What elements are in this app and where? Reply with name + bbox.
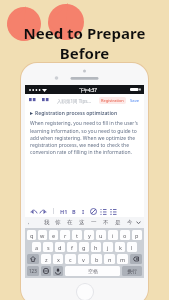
button[interactable]: 你 xyxy=(52,219,64,226)
button[interactable]: 不 xyxy=(100,219,112,226)
button[interactable] xyxy=(136,220,141,225)
button[interactable]: Insert xyxy=(41,96,50,105)
staticText: e xyxy=(52,232,56,239)
button[interactable]: f xyxy=(67,242,77,252)
staticText: y xyxy=(88,232,91,239)
staticText: 在 xyxy=(67,219,73,226)
button[interactable]: v xyxy=(78,254,89,264)
staticText: 你 xyxy=(55,219,61,226)
button[interactable]: Bulleted list xyxy=(99,207,108,216)
button[interactable]: p xyxy=(132,230,142,240)
button[interactable]: Redo xyxy=(39,207,48,216)
staticText: 下午4:37 xyxy=(79,87,97,93)
staticText: 换行 xyxy=(127,268,137,274)
button[interactable]: Registration xyxy=(101,98,124,103)
staticText: Save xyxy=(130,98,140,104)
staticText: 123 xyxy=(29,268,37,274)
staticText: f xyxy=(71,244,73,251)
staticText: B xyxy=(72,208,76,215)
button[interactable]: Undo xyxy=(29,207,38,216)
staticText: 是 xyxy=(115,219,121,226)
button[interactable]: c xyxy=(65,254,76,264)
button[interactable]: 我 xyxy=(41,219,52,226)
staticText: 今 xyxy=(127,219,133,226)
button[interactable]: n xyxy=(104,254,115,264)
button[interactable]: k xyxy=(115,242,125,252)
button[interactable]: Shift xyxy=(27,254,39,264)
button[interactable]: Heading xyxy=(59,207,68,216)
button[interactable]: Language xyxy=(41,266,51,276)
button[interactable]: Backspace xyxy=(130,254,142,264)
staticText: d xyxy=(58,244,62,251)
button[interactable]: b xyxy=(91,254,102,264)
button[interactable]: s xyxy=(43,242,53,252)
button[interactable]: 换行 xyxy=(122,266,142,276)
staticText: o xyxy=(123,232,127,239)
staticText: l xyxy=(131,244,133,251)
button[interactable]: h xyxy=(91,242,101,252)
staticText: q xyxy=(30,232,34,239)
button[interactable]: q xyxy=(27,230,36,240)
button[interactable]: m xyxy=(117,254,128,264)
button[interactable]: i xyxy=(108,230,118,240)
button[interactable]: x xyxy=(53,254,63,264)
staticText: 入职第1周 Tips... xyxy=(57,98,91,104)
button[interactable]: a xyxy=(32,242,41,252)
staticText: r xyxy=(64,232,67,239)
button[interactable]: Save xyxy=(130,98,140,104)
button[interactable]: Numbered list xyxy=(109,207,118,216)
button[interactable]: Home xyxy=(77,284,93,300)
staticText: 这 xyxy=(79,219,85,226)
button[interactable]: 这 xyxy=(76,219,88,226)
staticText: n xyxy=(108,256,112,263)
button[interactable]: 是 xyxy=(112,219,124,226)
staticText: h xyxy=(94,244,98,251)
button[interactable]: Text style xyxy=(28,96,37,105)
staticText: Need to Prepare Before xyxy=(0,23,169,63)
button[interactable]: d xyxy=(55,242,65,252)
staticText: Registration xyxy=(101,98,124,103)
staticText: b xyxy=(95,256,99,263)
button[interactable]: e xyxy=(49,230,58,240)
staticText: t xyxy=(76,232,78,239)
button[interactable]: Bold xyxy=(69,207,78,216)
staticText: I xyxy=(82,208,85,215)
staticText: g xyxy=(82,244,86,251)
staticText: a xyxy=(35,244,39,251)
staticText: s xyxy=(47,244,50,251)
staticText: c xyxy=(69,256,72,263)
staticText: , xyxy=(28,219,30,226)
staticText: u xyxy=(99,232,103,239)
button[interactable]: l xyxy=(127,242,137,252)
button[interactable]: 空格 xyxy=(65,266,120,276)
staticText: 空格 xyxy=(88,268,98,274)
button[interactable]: t xyxy=(72,230,82,240)
button[interactable]: 今 xyxy=(124,219,136,226)
staticText: k xyxy=(119,244,122,251)
staticText: Registration process optimization xyxy=(35,110,118,117)
button[interactable]: z xyxy=(41,254,51,264)
staticText: v xyxy=(82,256,85,263)
button[interactable]: g xyxy=(79,242,89,252)
staticText: i xyxy=(112,232,114,239)
button[interactable]: r xyxy=(60,230,70,240)
button[interactable]: y xyxy=(84,230,94,240)
button[interactable]: Strikethrough xyxy=(89,207,98,216)
staticText: j xyxy=(107,244,109,251)
staticText: H1 xyxy=(60,208,68,215)
button[interactable]: j xyxy=(103,242,113,252)
staticText: w xyxy=(40,232,45,239)
button[interactable]: u xyxy=(96,230,106,240)
button[interactable]: w xyxy=(38,230,47,240)
staticText: 不 xyxy=(103,219,109,226)
staticText: m xyxy=(120,256,126,263)
staticText: p xyxy=(135,232,139,239)
button[interactable]: 在 xyxy=(64,219,76,226)
button[interactable]: 一 xyxy=(88,219,100,226)
button[interactable]: o xyxy=(120,230,130,240)
staticText: When registering, you need to fill in th… xyxy=(30,120,140,155)
button[interactable]: Italic xyxy=(79,207,88,216)
staticText: 我 xyxy=(44,219,50,226)
button[interactable]: 123 xyxy=(27,266,39,276)
button[interactable]: Voice input xyxy=(53,266,63,276)
